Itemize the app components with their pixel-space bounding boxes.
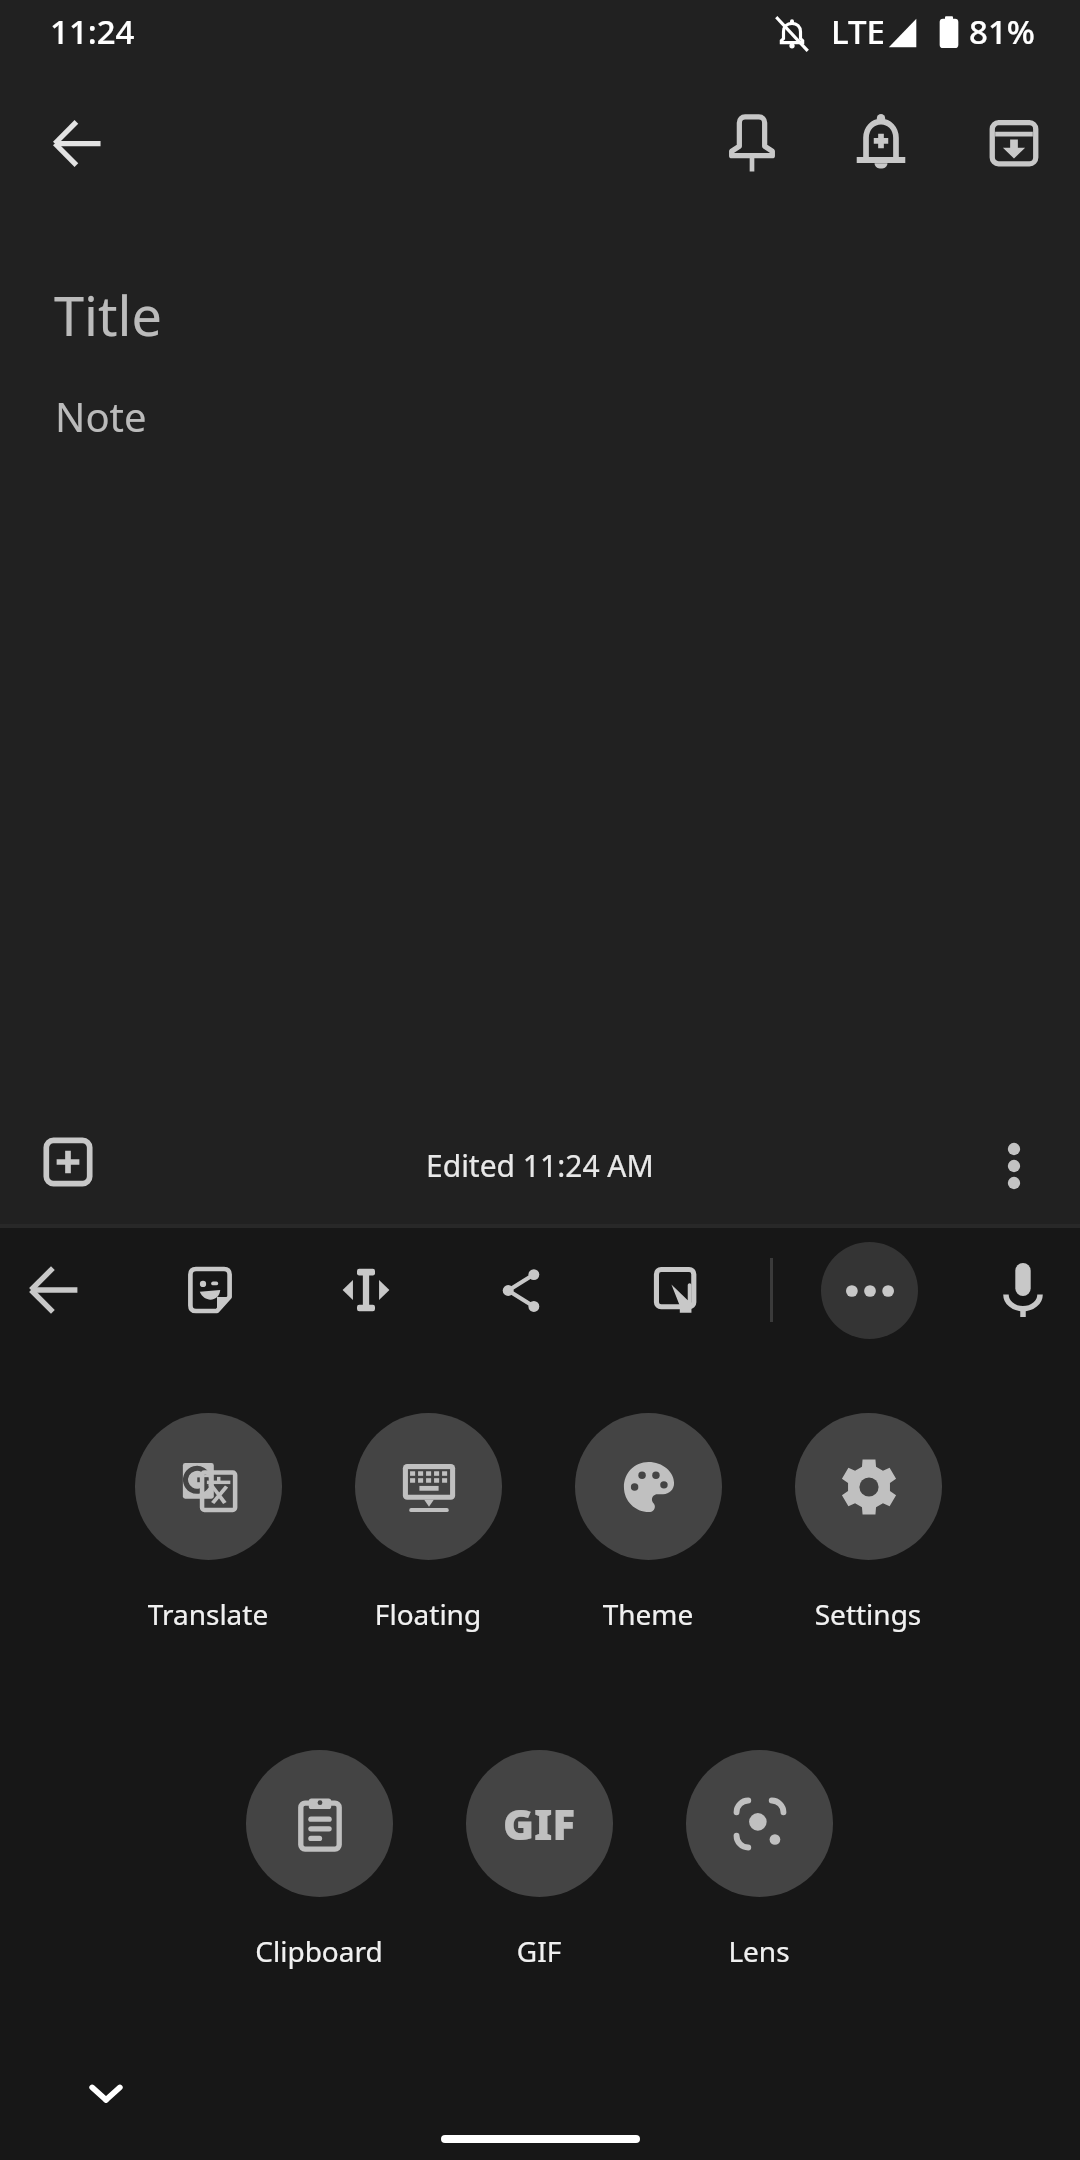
staticText: Theme	[538, 1595, 758, 1633]
button[interactable]: More options	[968, 1120, 1060, 1212]
staticText: Note	[55, 389, 147, 443]
staticText: Translate	[98, 1595, 318, 1633]
button[interactable]: Back	[8, 1243, 102, 1337]
staticText: Clipboard	[209, 1932, 429, 1970]
staticText: Lens	[649, 1932, 869, 1970]
button[interactable]: Add	[22, 1116, 114, 1208]
button[interactable]: GIF	[429, 1750, 649, 1970]
staticText: Floating	[318, 1595, 538, 1633]
button[interactable]: More	[821, 1242, 918, 1339]
staticText: Title	[54, 278, 162, 352]
button[interactable]: Floating	[318, 1413, 538, 1633]
button[interactable]: Voice input	[976, 1243, 1070, 1337]
button[interactable]: Theme	[538, 1413, 758, 1633]
button[interactable]: Translate	[98, 1413, 318, 1633]
staticText: 11:24	[50, 9, 135, 54]
button[interactable]: Reminder	[834, 96, 928, 190]
button[interactable]: Pin	[705, 96, 799, 190]
staticText: GIF	[429, 1932, 649, 1970]
button[interactable]: Screenshot	[630, 1243, 724, 1337]
button[interactable]: Share	[474, 1243, 568, 1337]
staticText: Settings	[758, 1595, 978, 1633]
button[interactable]: Stickers	[163, 1243, 257, 1337]
button[interactable]: Collapse keyboard	[61, 2048, 151, 2138]
button[interactable]: Settings	[758, 1413, 978, 1633]
staticText: Edited 11:24 AM	[426, 1145, 654, 1186]
staticText: LTE	[831, 9, 885, 54]
staticText: 81%	[969, 9, 1035, 54]
button[interactable]: Back	[31, 96, 125, 190]
button[interactable]: Archive	[967, 96, 1061, 190]
button[interactable]: Text editing	[319, 1243, 413, 1337]
staticText: GIF	[503, 1795, 576, 1852]
button[interactable]: Clipboard	[209, 1750, 429, 1970]
button[interactable]: Lens	[649, 1750, 869, 1970]
